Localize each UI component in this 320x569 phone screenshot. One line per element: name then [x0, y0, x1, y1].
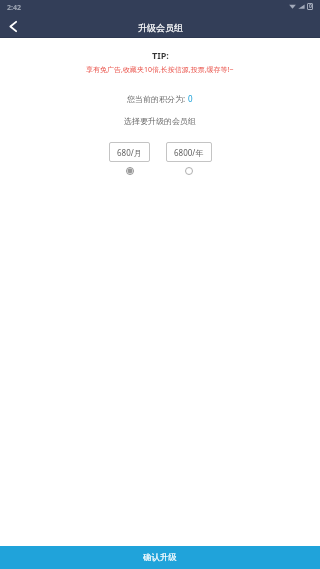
- staticText: 680/月: [117, 147, 142, 158]
- staticText: 您当前的积分为:: [127, 93, 188, 104]
- staticText: TIP:: [152, 49, 169, 61]
- staticText: 确认升级: [143, 552, 177, 563]
- staticText: 升级会员组: [138, 22, 183, 33]
- button[interactable]: 680/月: [109, 142, 150, 175]
- staticText: 选择要升级的会员组: [124, 116, 196, 126]
- button[interactable]: 6800/年: [166, 142, 212, 175]
- staticText: 享有免广告,收藏夹10倍,长按信源,投票,缓存等!~: [86, 65, 234, 75]
- button[interactable]: Back: [1, 16, 25, 38]
- staticText: 0: [309, 3, 312, 10]
- staticText: 2:42: [7, 3, 21, 13]
- staticText: 6800/年: [174, 147, 204, 158]
- staticText: 0: [188, 93, 193, 104]
- button[interactable]: 确认升级: [0, 546, 320, 569]
